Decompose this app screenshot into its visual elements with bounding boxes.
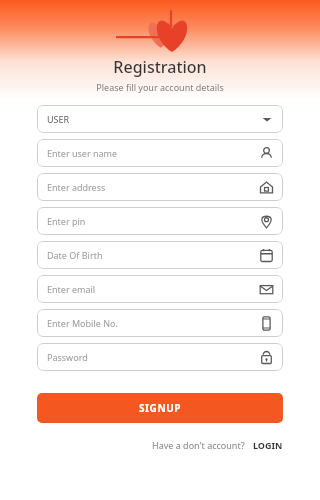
staticText: Registration: [0, 56, 320, 78]
staticText: USER: [47, 113, 260, 125]
button[interactable]: LOGIN: [253, 439, 283, 451]
other: Pin code: [259, 214, 274, 229]
staticText: Enter email: [47, 283, 259, 295]
staticText: Password: [47, 351, 259, 363]
staticText: Enter pin: [47, 215, 259, 227]
staticText: Enter user name: [47, 147, 259, 159]
other: Date of birth: [259, 248, 274, 263]
button[interactable]: Enter pin: [37, 207, 283, 235]
other: Mobile number: [259, 316, 274, 331]
staticText: Please fill your account details: [0, 81, 320, 93]
other: Email: [259, 282, 274, 297]
button[interactable]: SIGNUP: [37, 393, 283, 423]
staticText: Enter Mobile No.: [47, 317, 259, 329]
staticText: LOGIN: [253, 439, 283, 451]
other: User name: [259, 146, 274, 161]
staticText: Enter address: [47, 181, 259, 193]
other: Password: [259, 350, 274, 365]
button[interactable]: Enter email: [37, 275, 283, 303]
button[interactable]: Enter address: [37, 173, 283, 201]
button[interactable]: Password: [37, 343, 283, 371]
staticText: Date Of Birth: [47, 249, 259, 261]
button[interactable]: Enter user name: [37, 139, 283, 167]
other: Select user type: [260, 112, 274, 126]
button[interactable]: USER: [37, 105, 283, 133]
button[interactable]: Date Of Birth: [37, 241, 283, 269]
staticText: SIGNUP: [139, 401, 182, 415]
other: Address: [259, 180, 274, 195]
button[interactable]: Enter Mobile No.: [37, 309, 283, 337]
staticText: Have a don't account?: [152, 439, 245, 451]
